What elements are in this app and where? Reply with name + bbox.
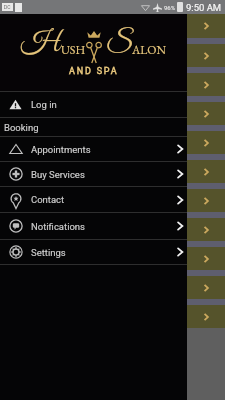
staticText: Log in xyxy=(31,99,57,110)
staticText: Notifications xyxy=(31,221,86,232)
staticText: USH xyxy=(61,42,86,58)
staticText: H xyxy=(21,26,61,61)
staticText: 96% xyxy=(164,4,176,11)
staticText: Contact xyxy=(31,194,65,205)
staticText: 9:50 AM xyxy=(186,2,222,13)
button[interactable]: Appointments xyxy=(0,137,187,161)
staticText: Settings xyxy=(31,247,66,258)
button[interactable]: Log in xyxy=(0,92,187,117)
staticText: AND SPA xyxy=(69,66,119,77)
staticText: DC xyxy=(4,4,11,10)
button[interactable]: Contact xyxy=(0,187,187,212)
staticText: S xyxy=(106,26,132,61)
staticText: Booking xyxy=(4,122,39,133)
staticText: Buy Services xyxy=(31,169,85,180)
button[interactable]: Buy Services xyxy=(0,162,187,186)
button[interactable]: Notifications xyxy=(0,213,187,239)
staticText: Appointments xyxy=(31,144,91,155)
button[interactable]: Settings xyxy=(0,240,187,264)
staticText: ALON xyxy=(132,42,166,58)
